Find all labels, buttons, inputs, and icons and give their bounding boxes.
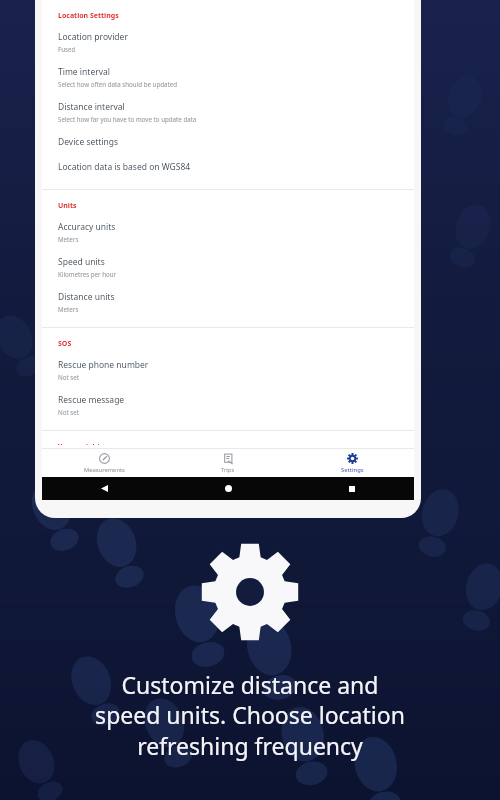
button[interactable]: Back: [42, 485, 166, 492]
button[interactable]: Location provider: [42, 24, 414, 59]
staticText: Not set: [58, 373, 79, 381]
staticText: Select how often data should be updated: [58, 80, 178, 88]
button[interactable]: Time interval: [42, 59, 414, 94]
staticText: Time interval: [58, 66, 110, 78]
staticText: Speed units: [58, 256, 105, 268]
button[interactable]: Settings: [290, 449, 414, 477]
staticText: Kilometres per hour: [58, 270, 117, 278]
button[interactable]: Rescue phone number: [42, 352, 414, 387]
staticText: Distance interval: [58, 101, 125, 113]
staticText: Meters: [58, 305, 79, 313]
staticText: Trips: [221, 466, 235, 474]
staticText: Units: [58, 201, 77, 211]
staticText: Settings: [341, 466, 364, 474]
staticText: Device settings: [58, 136, 119, 148]
staticText: SOS: [58, 339, 72, 349]
staticText: Location data is based on WGS84: [58, 161, 191, 173]
staticText: Location Settings: [58, 11, 119, 21]
button[interactable]: Trips: [166, 449, 290, 477]
button[interactable]: Rescue message: [42, 387, 414, 422]
button[interactable]: Location data is based on WGS84: [42, 154, 414, 179]
button[interactable]: Speed units: [42, 249, 414, 284]
button[interactable]: Accuracy units: [42, 214, 414, 249]
staticText: Location provider: [58, 31, 128, 43]
staticText: Distance units: [58, 291, 115, 303]
staticText: Rescue phone number: [58, 359, 149, 371]
button[interactable]: Measurements: [42, 449, 166, 477]
staticText: Fused: [58, 45, 76, 53]
button[interactable]: Home: [166, 485, 290, 492]
button[interactable]: Distance units: [42, 284, 414, 319]
staticText: Measurements: [84, 466, 125, 474]
staticText: Your weight: [58, 442, 101, 445]
button[interactable]: Device settings: [42, 129, 414, 154]
button[interactable]: Distance interval: [42, 94, 414, 129]
staticText: Rescue message: [58, 394, 125, 406]
staticText: Select how far you have to move to updat…: [58, 115, 197, 123]
staticText: Meters: [58, 235, 79, 243]
staticText: Not set: [58, 408, 79, 416]
staticText: Accuracy units: [58, 221, 116, 233]
staticText: Customize distance and speed units. Choo…: [10, 669, 490, 762]
button[interactable]: Recents: [290, 486, 414, 492]
